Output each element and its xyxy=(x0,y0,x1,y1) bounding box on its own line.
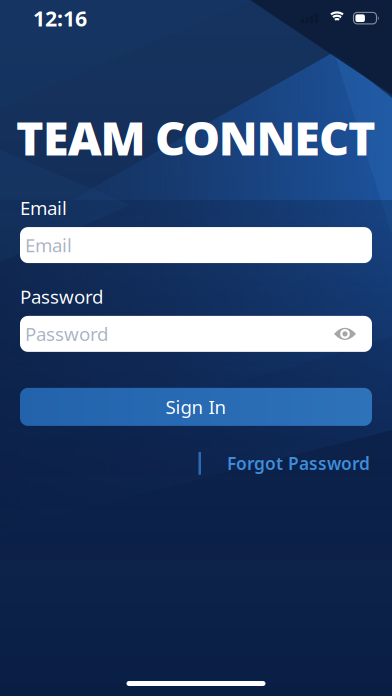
staticText: Forgot Password xyxy=(227,452,370,475)
staticText: Password xyxy=(20,284,103,309)
staticText: Email xyxy=(20,195,67,220)
staticText: Sign In xyxy=(165,394,226,419)
button[interactable]: Forgot Password xyxy=(227,452,370,475)
staticText: 12:16 xyxy=(33,4,87,32)
staticText: Password xyxy=(25,321,108,346)
staticText: Email xyxy=(25,233,72,257)
button[interactable]: Sign In xyxy=(20,388,372,426)
button[interactable]: Show password xyxy=(334,326,372,341)
staticText: TEAM CONNECT xyxy=(16,106,376,168)
